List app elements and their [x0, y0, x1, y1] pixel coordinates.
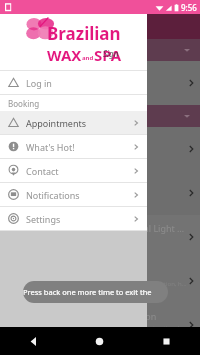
staticText: What's Hot! — [26, 141, 133, 153]
button[interactable]: Recents — [133, 327, 200, 355]
staticText: layer of dead — [6, 193, 46, 202]
button[interactable]: Log in — [0, 71, 147, 94]
staticText: A procedure that combines cleansing, exf… — [6, 280, 188, 288]
staticText: reduce scarring and — [6, 140, 68, 149]
staticText: sessions are necessary — [6, 149, 76, 158]
staticText: Contact — [26, 165, 133, 177]
staticText: Notifications — [26, 189, 133, 201]
staticText: and removes the outermost layer of dead — [6, 332, 123, 340]
staticText: and antioxidant protection. Tap to learn… — [6, 288, 135, 296]
button[interactable]: Dark Spots/Sun Damage IPL Facial Light T… — [0, 215, 200, 259]
button[interactable]: What's Hot! — [0, 135, 147, 158]
staticText: Dark Spots/Sun Damage IPL Facial Light T… — [6, 222, 188, 234]
button[interactable]: removes the outermost — [0, 171, 200, 215]
staticText: SPA — [94, 45, 122, 65]
button[interactable]: Settings — [0, 207, 147, 230]
staticText: Log in — [26, 77, 139, 89]
staticText: 9:56 — [181, 2, 197, 13]
staticText: Hydro Facial w/ Microdermabrasion — [6, 310, 157, 322]
staticText: Sign — [103, 48, 119, 59]
button[interactable]: Home — [66, 327, 133, 355]
staticText: A procedure that combines cleansing, exf… — [6, 324, 188, 332]
button[interactable]: Appointments — [0, 111, 147, 134]
staticText: Booking — [8, 98, 40, 109]
staticText: skin of a minimum of 10 — [6, 83, 80, 92]
button[interactable]: Contact — [0, 159, 147, 182]
staticText: and — [82, 54, 94, 62]
staticText: Settings — [26, 213, 133, 225]
staticText: Press back one more time to exit the app… — [23, 287, 168, 297]
staticText: removes the outermost — [6, 184, 78, 193]
staticText: WAX — [47, 45, 82, 65]
staticText: Appointments — [26, 117, 133, 129]
button[interactable]: This service helps rid the — [0, 61, 200, 105]
button[interactable]: Hydro Facial — [0, 259, 200, 303]
button[interactable]: Hydro Facial w/ Microdermabrasion — [0, 303, 200, 347]
button[interactable]: Back — [0, 327, 66, 355]
staticText: This service helps rid the — [6, 74, 82, 83]
button[interactable]: reduce scarring and — [0, 127, 200, 171]
staticText: Brazilian — [47, 22, 121, 45]
button[interactable]: Notifications — [0, 183, 147, 206]
